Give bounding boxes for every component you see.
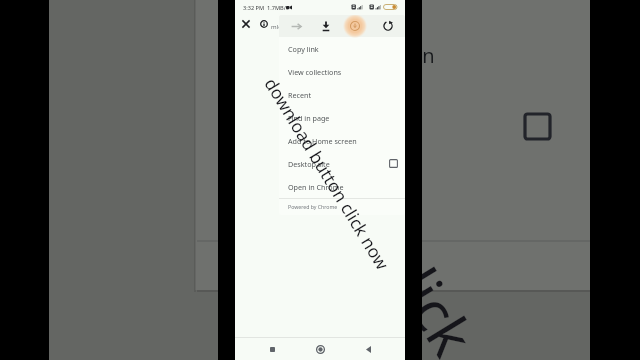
button[interactable]: View collections <box>279 60 405 83</box>
button[interactable]: Open in Chrome <box>279 175 405 198</box>
button[interactable]: Recents <box>261 338 283 360</box>
staticText: View collections <box>288 67 342 77</box>
button[interactable]: Add to Home screen <box>279 129 405 152</box>
button[interactable]: Downloads <box>340 15 369 37</box>
staticText: Powered by Chrome <box>288 203 338 210</box>
button[interactable]: Desktop site <box>279 152 405 175</box>
staticText: Open in Chrome <box>288 182 344 192</box>
button[interactable]: Find in page <box>279 106 405 129</box>
staticText: Copy link <box>288 44 319 54</box>
staticText: Find in page <box>288 113 330 123</box>
staticText: Recent <box>288 90 312 100</box>
button[interactable]: Forward <box>282 15 310 37</box>
staticText: Add to Home screen <box>288 136 357 146</box>
button[interactable]: Reload <box>374 15 402 37</box>
button[interactable]: Recent <box>279 83 405 106</box>
button[interactable]: Copy link <box>279 37 405 60</box>
button[interactable]: Back <box>357 338 379 360</box>
button[interactable]: Close <box>237 15 255 33</box>
button[interactable]: Download page <box>312 15 340 37</box>
button[interactable]: Page info <box>255 15 273 33</box>
button[interactable]: Home <box>309 338 331 360</box>
staticText: 3:32 PM 1.7MB/s <box>243 4 289 12</box>
staticText: mloa <box>271 23 286 31</box>
staticText: en <box>411 42 435 69</box>
staticText: Desktop site <box>288 159 330 169</box>
